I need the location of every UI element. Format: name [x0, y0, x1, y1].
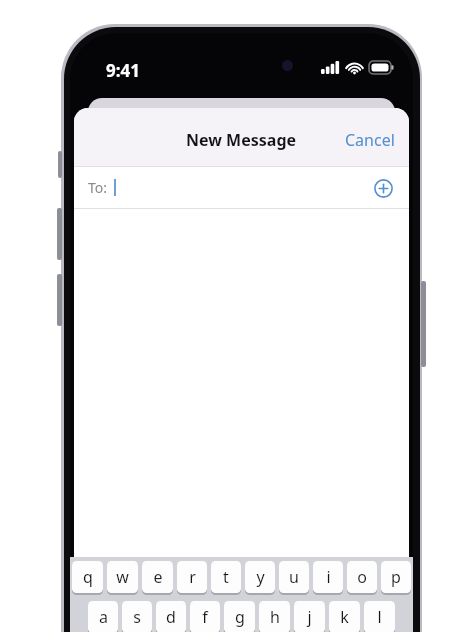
- staticText: f: [202, 606, 208, 628]
- staticText: r: [189, 566, 196, 588]
- button[interactable]: t: [211, 561, 241, 594]
- staticText: g: [235, 606, 245, 628]
- button[interactable]: k: [329, 601, 360, 632]
- staticText: s: [133, 606, 141, 628]
- button[interactable]: a: [88, 601, 118, 632]
- staticText: To:: [88, 178, 108, 197]
- button[interactable]: w: [107, 561, 138, 594]
- button[interactable]: p: [381, 561, 411, 594]
- button[interactable]: j: [294, 601, 325, 632]
- other: Dictate: [370, 608, 390, 628]
- staticText: u: [289, 566, 299, 588]
- staticText: e: [153, 566, 163, 588]
- staticText: t: [223, 566, 229, 588]
- button[interactable]: Add attachment: [84, 605, 111, 632]
- button[interactable]: r: [177, 561, 207, 594]
- button[interactable]: q: [72, 561, 103, 594]
- button[interactable]: d: [156, 601, 186, 632]
- button[interactable]: i: [313, 561, 343, 594]
- button[interactable]: g: [224, 601, 255, 632]
- staticText: h: [270, 606, 280, 628]
- button[interactable]: Cancel: [331, 123, 409, 157]
- staticText: l: [377, 606, 382, 628]
- staticText: a: [99, 606, 108, 628]
- button[interactable]: l: [364, 601, 395, 632]
- button[interactable]: e: [142, 561, 173, 594]
- button[interactable]: Dictate: [121, 603, 399, 632]
- button[interactable]: h: [259, 601, 290, 632]
- button[interactable]: u: [279, 561, 309, 594]
- button[interactable]: f: [190, 601, 220, 632]
- button[interactable]: s: [122, 601, 152, 632]
- staticText: o: [357, 566, 367, 588]
- staticText: 9:41: [106, 59, 140, 82]
- staticText: y: [256, 566, 265, 588]
- staticText: d: [166, 606, 176, 628]
- staticText: Cancel: [345, 129, 395, 151]
- staticText: q: [83, 566, 93, 588]
- staticText: p: [391, 566, 401, 588]
- staticText: i: [326, 566, 331, 588]
- staticText: j: [307, 606, 312, 628]
- button[interactable]: y: [245, 561, 275, 594]
- staticText: New Message: [186, 129, 297, 151]
- button[interactable]: To:: [74, 167, 409, 208]
- button[interactable]: Add contact: [366, 171, 400, 205]
- staticText: w: [116, 566, 129, 588]
- staticText: k: [340, 606, 349, 628]
- button[interactable]: o: [347, 561, 377, 594]
